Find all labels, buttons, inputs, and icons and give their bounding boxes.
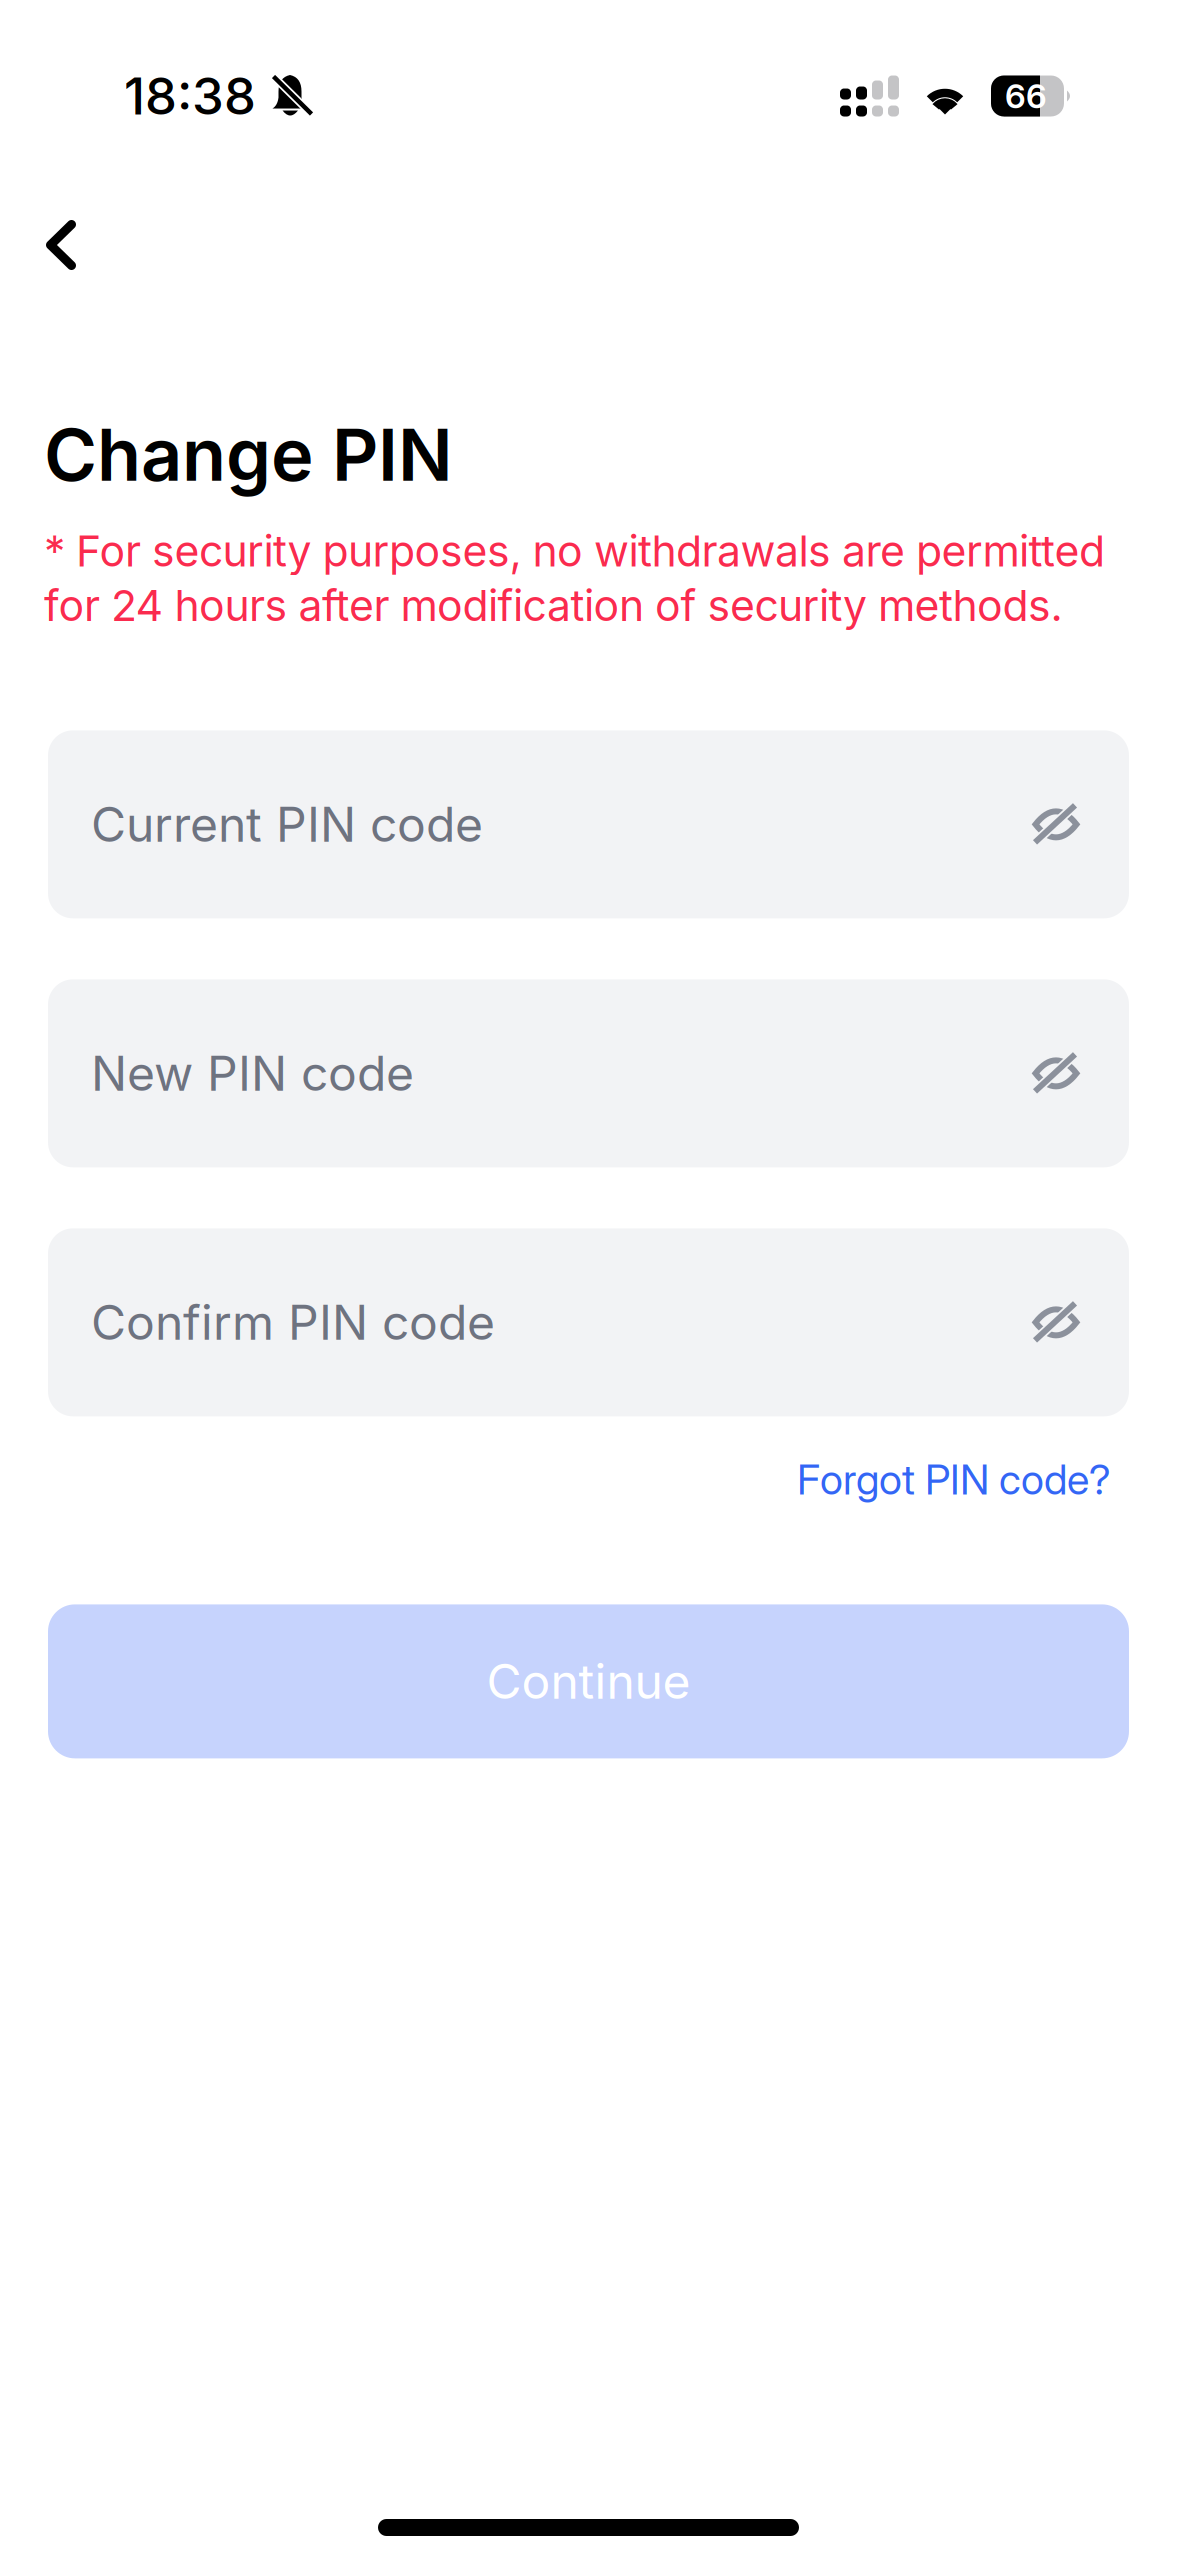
staticText: Continue bbox=[486, 1652, 690, 1710]
button[interactable]: New PIN code bbox=[48, 979, 1129, 1167]
staticText: Forgot PIN code? bbox=[797, 1454, 1111, 1504]
staticText: New PIN code bbox=[91, 1044, 414, 1102]
button[interactable]: Current PIN code bbox=[48, 730, 1129, 918]
staticText: 18:38 bbox=[124, 65, 256, 127]
button[interactable]: Continue bbox=[48, 1604, 1129, 1758]
staticText: Confirm PIN code bbox=[91, 1293, 495, 1351]
button[interactable]: Back bbox=[23, 193, 105, 297]
staticText: 66 bbox=[1005, 76, 1047, 116]
staticText: Change PIN bbox=[44, 411, 453, 498]
staticText: * For security purposes, no withdrawals … bbox=[44, 525, 1105, 631]
staticText: Current PIN code bbox=[91, 795, 483, 853]
button[interactable]: Confirm PIN code bbox=[48, 1228, 1129, 1416]
button[interactable]: Forgot PIN code? bbox=[797, 1454, 1129, 1504]
